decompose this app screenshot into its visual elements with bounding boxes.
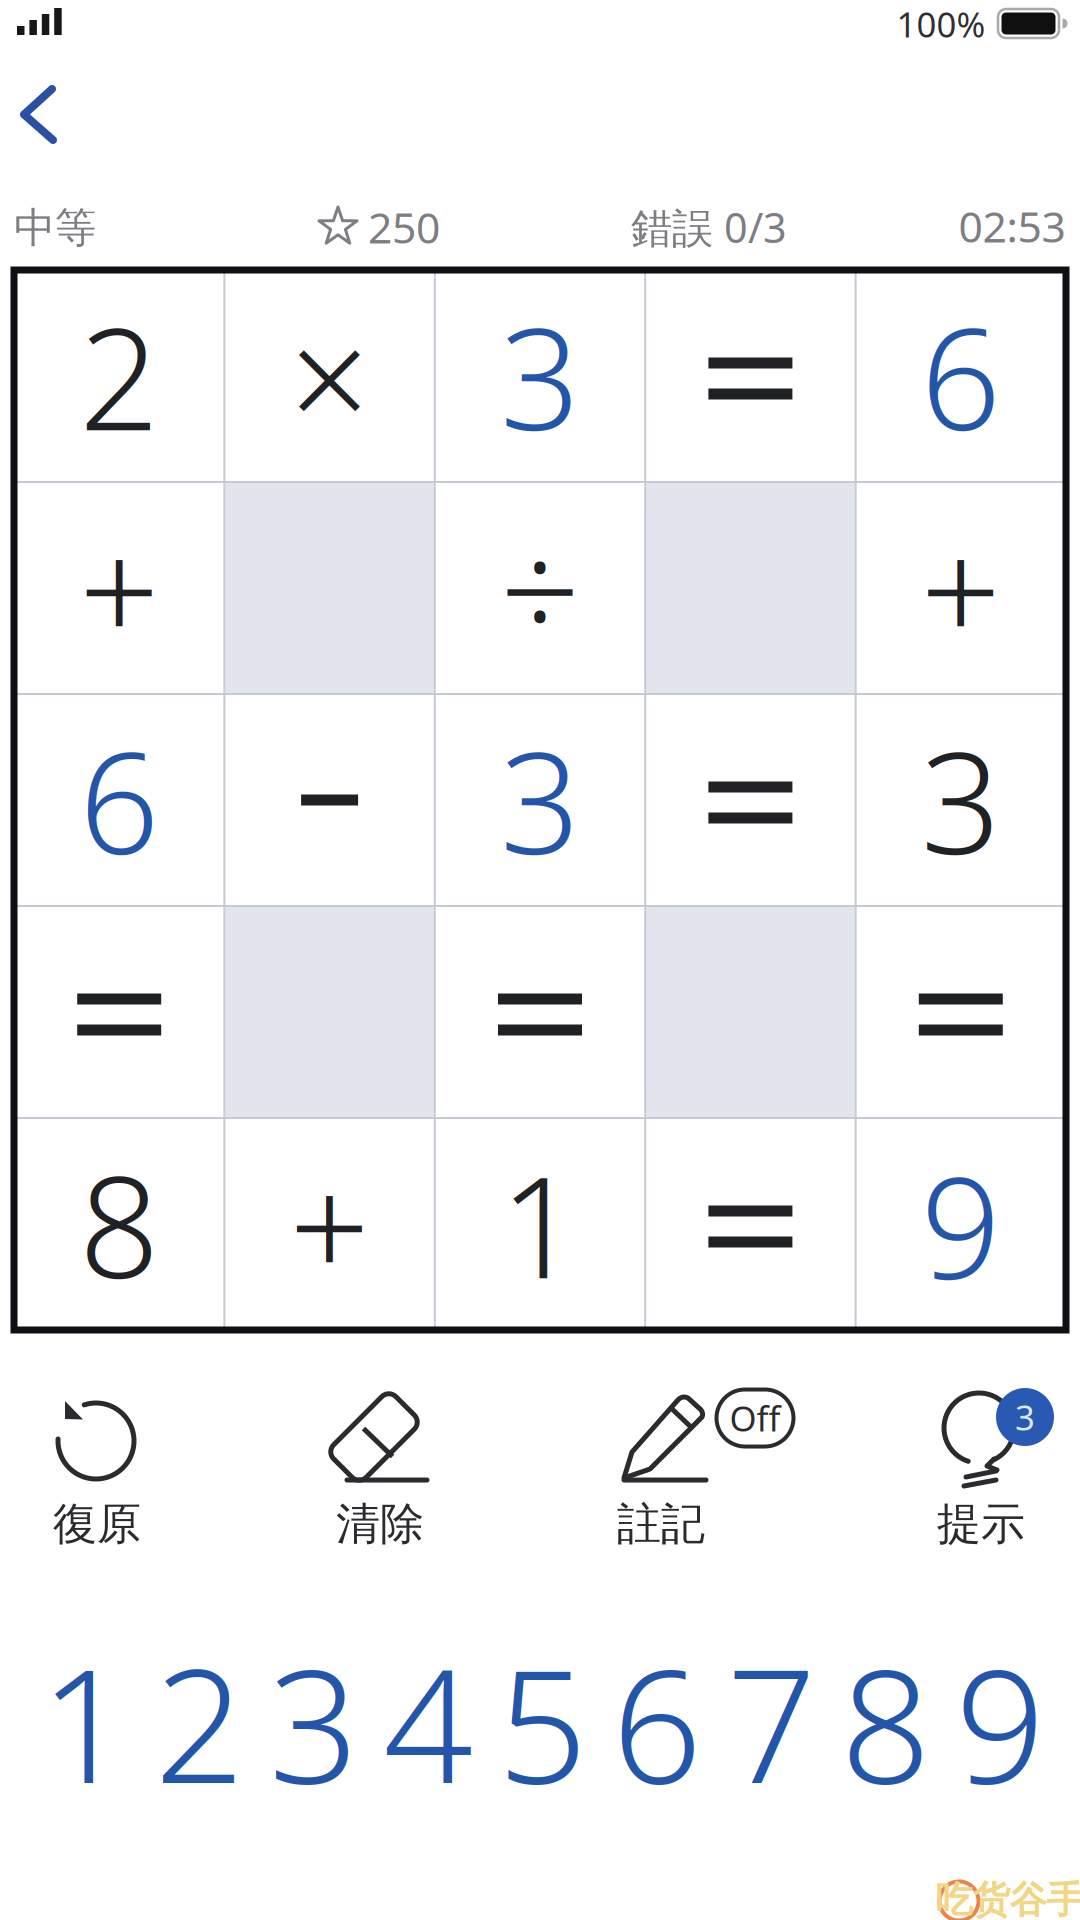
staticText: 5 <box>498 1617 588 1826</box>
button[interactable]: 1 <box>29 1637 141 1807</box>
staticText: 復原 <box>53 1497 141 1551</box>
staticText: 6 <box>79 707 159 893</box>
button[interactable]: Erase <box>285 1370 475 1560</box>
button[interactable]: Notes <box>566 1370 756 1560</box>
staticText: Off <box>729 1395 780 1441</box>
staticText: 中等 <box>14 203 96 253</box>
staticText: 9 <box>955 1617 1045 1826</box>
staticText: 1 <box>500 1131 580 1317</box>
staticText: + <box>79 495 159 681</box>
staticText: 吃货谷手游 <box>935 1877 1080 1920</box>
staticText: 7 <box>726 1617 816 1826</box>
button[interactable]: 8 <box>830 1637 942 1807</box>
staticText: 清除 <box>336 1497 424 1551</box>
button[interactable]: 2 <box>143 1637 255 1807</box>
staticText: 2 <box>154 1617 244 1826</box>
staticText: 3 <box>921 707 1001 893</box>
staticText: 1 <box>40 1617 130 1826</box>
button[interactable]: 4 <box>372 1637 484 1807</box>
staticText: 8 <box>79 1131 159 1317</box>
staticText: 2 <box>79 283 159 469</box>
staticText: ÷ <box>500 495 580 681</box>
staticText: 註記 <box>617 1497 705 1551</box>
button[interactable]: 5 <box>487 1637 599 1807</box>
staticText: 02:53 <box>958 198 1065 254</box>
button[interactable]: 3 <box>258 1637 370 1807</box>
button[interactable]: 7 <box>715 1637 827 1807</box>
button[interactable]: 9 <box>944 1637 1056 1807</box>
staticText: 3 <box>1015 1394 1035 1440</box>
staticText: 錯誤 0/3 <box>631 200 787 254</box>
staticText: 9 <box>921 1131 1001 1317</box>
staticText: 3 <box>269 1617 359 1826</box>
staticText: 250 <box>368 199 440 255</box>
staticText: 8 <box>841 1617 931 1826</box>
staticText: 提示 <box>937 1497 1025 1551</box>
staticText: 3 <box>500 707 580 893</box>
button[interactable]: 6 <box>601 1637 713 1807</box>
staticText: + <box>921 495 1001 681</box>
staticText: + <box>290 1131 370 1317</box>
staticText: × <box>290 283 370 469</box>
staticText: 100% <box>896 1 985 47</box>
button[interactable]: Back <box>8 85 72 145</box>
staticText: 3 <box>500 283 580 469</box>
button[interactable]: Undo <box>1 1370 191 1560</box>
staticText: 6 <box>921 283 1001 469</box>
button[interactable]: Hint <box>884 1370 1074 1560</box>
staticText: 4 <box>383 1617 473 1826</box>
staticText: 6 <box>612 1617 702 1826</box>
